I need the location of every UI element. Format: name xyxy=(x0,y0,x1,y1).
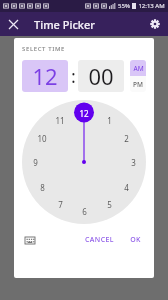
button[interactable]: 8 xyxy=(33,178,51,196)
staticText: 9 xyxy=(33,157,38,168)
staticText: 7 xyxy=(58,199,63,210)
button[interactable]: 11 xyxy=(51,111,69,129)
staticText: OK xyxy=(130,235,141,245)
button[interactable]: OK xyxy=(125,231,146,249)
button[interactable]: 2 xyxy=(117,129,135,147)
staticText: 8 xyxy=(40,182,45,193)
button[interactable]: 12 xyxy=(75,104,93,122)
staticText: CANCEL xyxy=(85,235,114,245)
button[interactable]: 5 xyxy=(100,195,118,213)
button[interactable]: 1 xyxy=(100,111,118,129)
button[interactable]: 6 xyxy=(75,202,93,220)
staticText: 12:13 AM xyxy=(138,2,165,10)
staticText: : xyxy=(71,64,76,89)
staticText: Time Picker xyxy=(34,17,95,32)
button[interactable]: 00 xyxy=(78,60,124,92)
button[interactable]: 10 xyxy=(33,129,51,147)
button[interactable]: 3 xyxy=(124,153,142,171)
staticText: 10 xyxy=(37,133,47,144)
staticText: SELECT TIME xyxy=(22,45,65,53)
staticText: 2 xyxy=(124,133,129,144)
button[interactable]: Settings xyxy=(147,16,163,32)
staticText: 11 xyxy=(55,115,65,126)
button[interactable]: 7 xyxy=(51,195,69,213)
button[interactable]: 12 xyxy=(22,60,68,92)
staticText: 6 xyxy=(82,206,87,217)
staticText: PM xyxy=(133,80,143,89)
staticText: 00 xyxy=(88,61,114,91)
button[interactable]: 9 xyxy=(26,153,44,171)
staticText: 3 xyxy=(131,157,136,168)
staticText: 5 xyxy=(107,199,112,210)
button[interactable]: CANCEL xyxy=(80,231,119,249)
staticText: AM xyxy=(133,64,144,73)
staticText: 4 xyxy=(124,182,129,193)
staticText: 12 xyxy=(32,61,58,91)
button[interactable]: PM xyxy=(130,76,146,92)
button[interactable]: 4 xyxy=(117,178,135,196)
button[interactable]: AM xyxy=(130,60,146,76)
staticText: 12 xyxy=(79,108,89,119)
staticText: 55% xyxy=(118,2,130,10)
staticText: 1 xyxy=(107,115,112,126)
button[interactable]: Close xyxy=(5,16,21,32)
button[interactable]: Switch to text input mode xyxy=(22,232,38,248)
